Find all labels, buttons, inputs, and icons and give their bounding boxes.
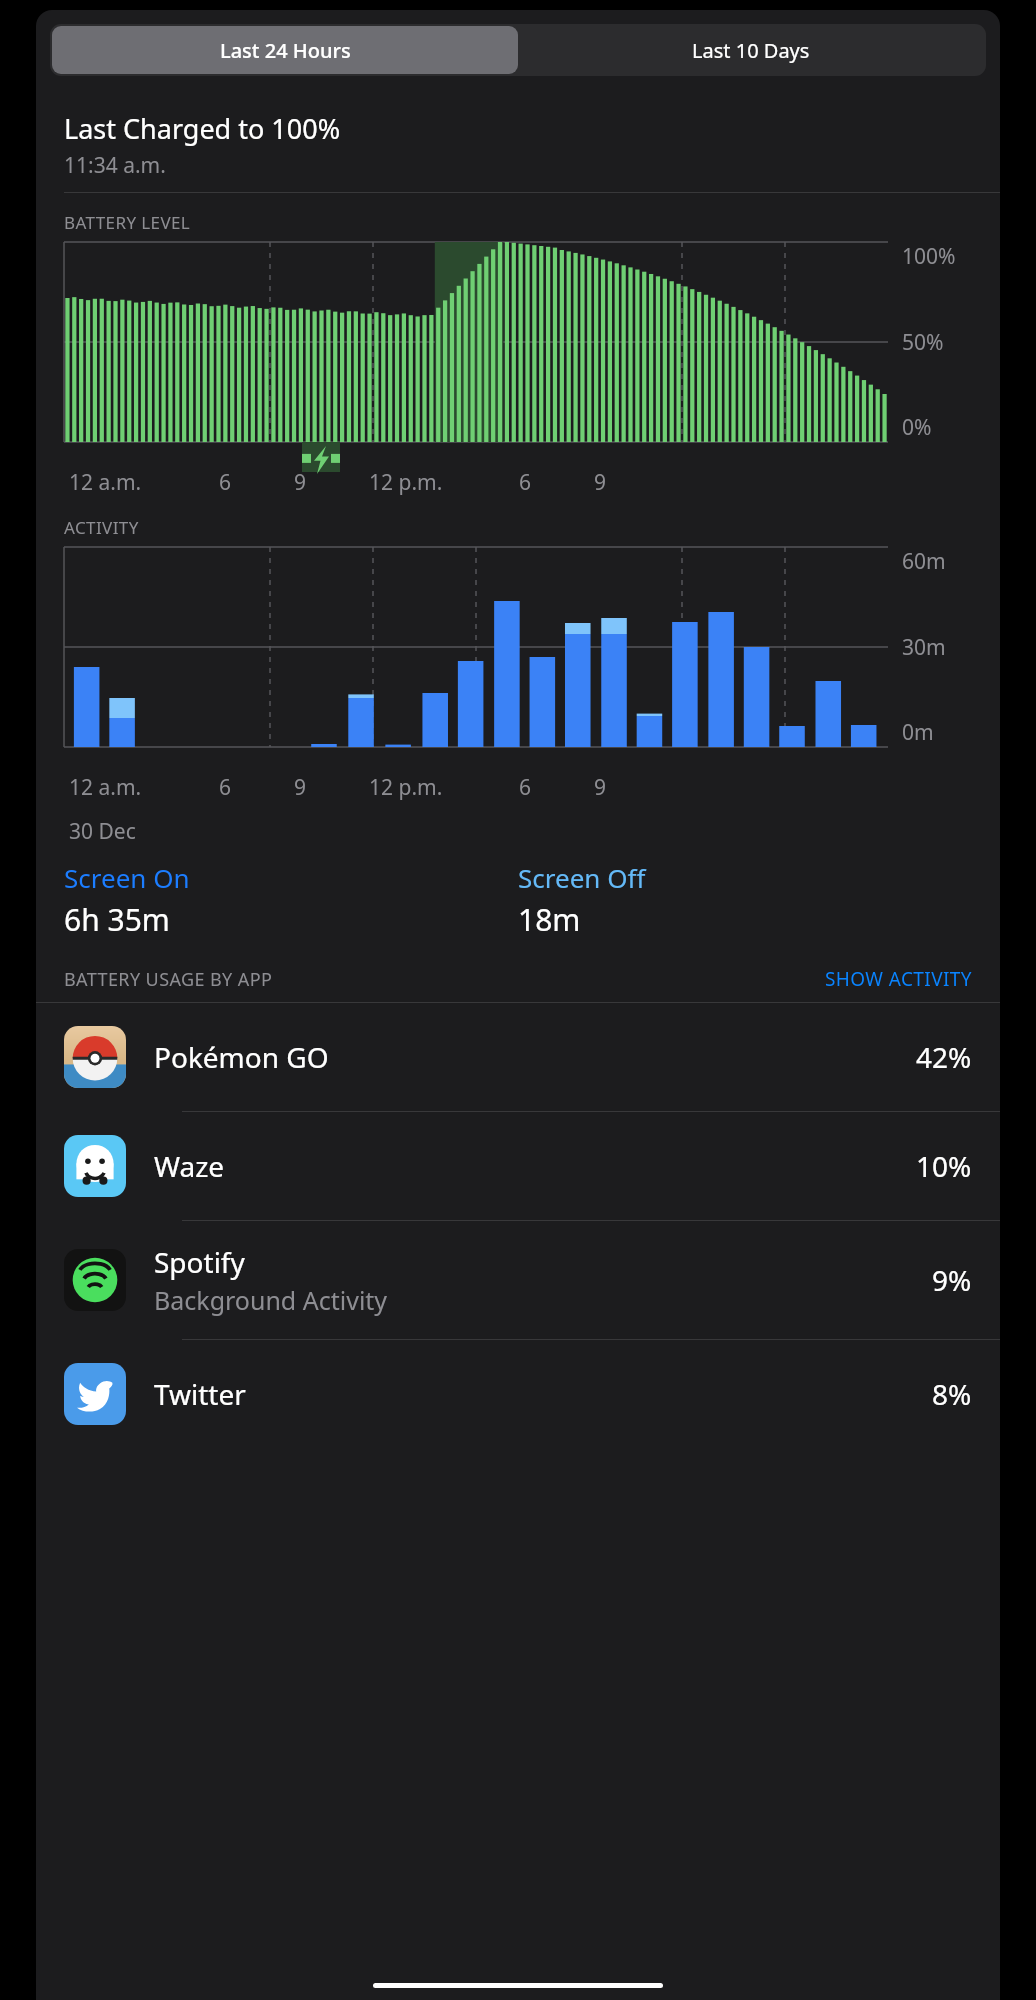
- staticText: 12 a.m.: [69, 468, 142, 497]
- staticText: 9: [294, 773, 307, 802]
- button[interactable]: Waze: [36, 1112, 1000, 1220]
- staticText: 11:34 a.m.: [64, 151, 166, 180]
- button[interactable]: Twitter: [36, 1340, 1000, 1448]
- staticText: 6h 35m: [64, 899, 170, 940]
- staticText: 6: [519, 468, 532, 497]
- staticText: 6: [519, 773, 532, 802]
- staticText: 10%: [916, 1147, 972, 1185]
- staticText: Last 10 Days: [692, 37, 810, 64]
- staticText: Last 24 Hours: [220, 37, 351, 64]
- staticText: SHOW ACTIVITY: [825, 966, 972, 992]
- staticText: Spotify: [154, 1243, 245, 1281]
- staticText: Screen Off: [518, 860, 646, 895]
- staticText: BATTERY LEVEL: [64, 211, 191, 234]
- staticText: 9: [594, 773, 607, 802]
- button[interactable]: Last 10 Days: [518, 26, 984, 74]
- staticText: 18m: [518, 899, 581, 940]
- staticText: Waze: [154, 1147, 225, 1185]
- staticText: 50%: [902, 328, 944, 357]
- button[interactable]: SHOW ACTIVITY: [825, 966, 972, 992]
- staticText: 0m: [902, 718, 934, 747]
- staticText: 30m: [902, 633, 946, 662]
- staticText: ACTIVITY: [64, 516, 139, 539]
- staticText: 12 p.m.: [369, 773, 443, 802]
- staticText: Twitter: [154, 1375, 246, 1413]
- button[interactable]: Last 24 Hours: [52, 26, 518, 74]
- staticText: 100%: [902, 242, 956, 271]
- staticText: 60m: [902, 547, 946, 576]
- staticText: 8%: [932, 1375, 972, 1413]
- button[interactable]: Pokémon GO: [36, 1003, 1000, 1111]
- staticText: 9: [294, 468, 307, 497]
- staticText: 9: [594, 468, 607, 497]
- staticText: BATTERY USAGE BY APP: [64, 967, 273, 992]
- staticText: 12 a.m.: [69, 773, 142, 802]
- staticText: 30 Dec: [69, 817, 136, 846]
- staticText: Pokémon GO: [154, 1038, 329, 1076]
- staticText: 12 p.m.: [369, 468, 443, 497]
- staticText: Last Charged to 100%: [64, 110, 341, 147]
- staticText: 9%: [932, 1261, 972, 1299]
- staticText: Background Activity: [154, 1283, 388, 1317]
- staticText: 0%: [902, 413, 932, 442]
- button[interactable]: Spotify: [36, 1221, 1000, 1339]
- staticText: 6: [219, 773, 232, 802]
- staticText: 42%: [916, 1038, 972, 1076]
- staticText: Screen On: [64, 860, 190, 895]
- staticText: 6: [219, 468, 232, 497]
